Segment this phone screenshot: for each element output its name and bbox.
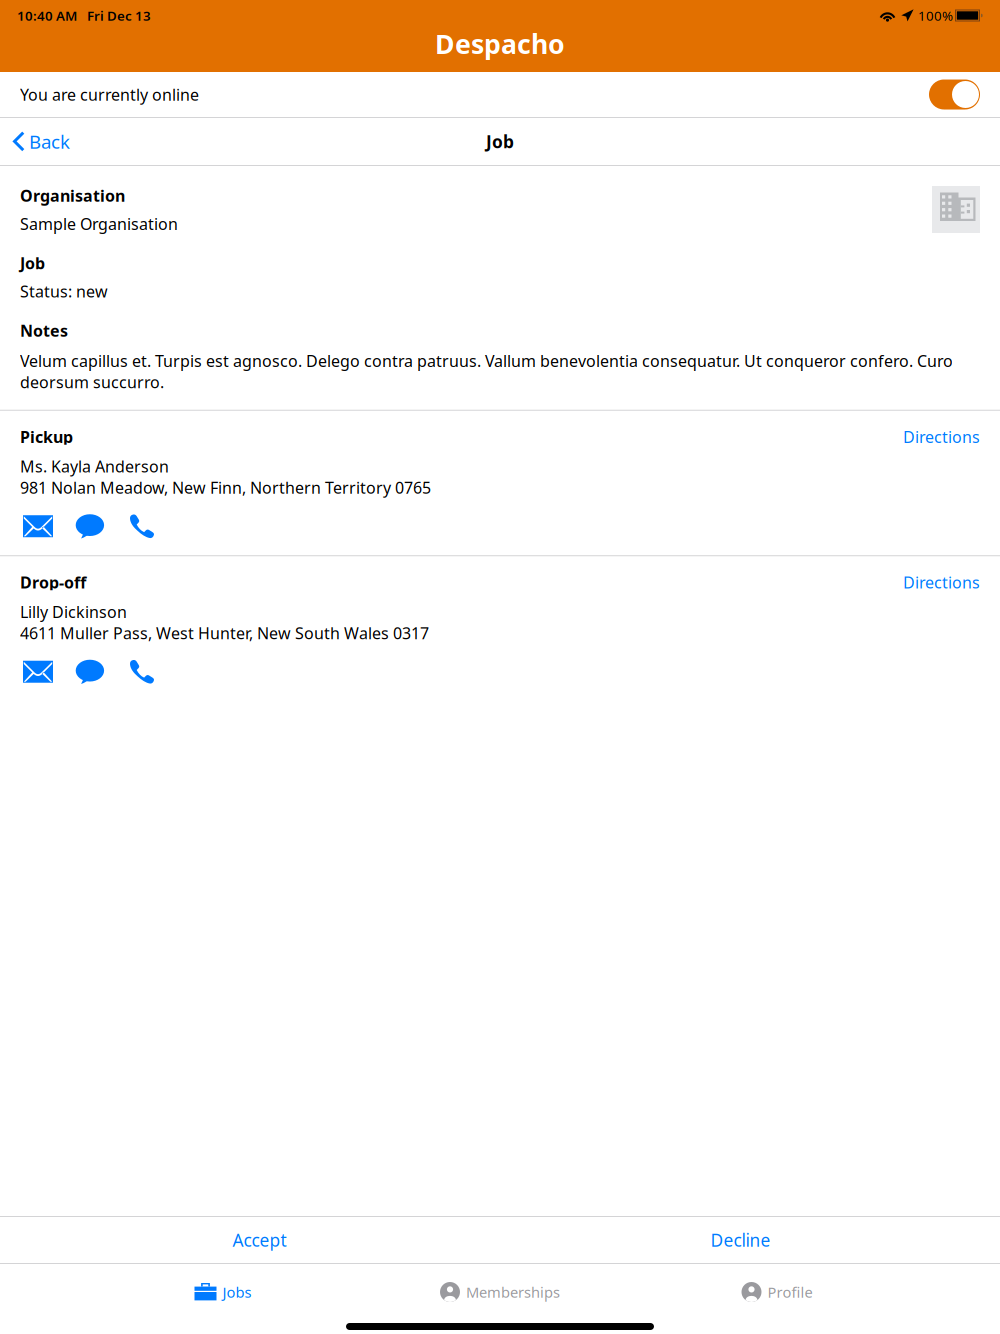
staticText: Velum capillus et. Turpis est agnosco. D…: [20, 350, 953, 393]
staticText: 4611 Muller Pass, West Hunter, New South…: [20, 622, 429, 644]
button[interactable]: Jobs: [84, 1267, 361, 1317]
button[interactable]: Directions: [903, 426, 980, 447]
staticText: Memberships: [466, 1282, 560, 1302]
staticText: Job: [486, 130, 514, 153]
button[interactable]: Call: [116, 513, 168, 539]
staticText: Notes: [20, 320, 68, 341]
staticText: Job: [20, 252, 45, 274]
button[interactable]: Call: [116, 659, 168, 685]
staticText: Fri Dec 13: [87, 7, 151, 24]
staticText: Status: new: [20, 281, 108, 302]
staticText: Profile: [767, 1282, 812, 1302]
button[interactable]: Accept: [19, 1217, 500, 1263]
staticText: Directions: [903, 572, 980, 593]
staticText: Decline: [710, 1228, 770, 1251]
button[interactable]: Message: [64, 659, 116, 685]
button[interactable]: Email: [12, 513, 64, 539]
staticText: You are currently online: [20, 84, 199, 105]
staticText: Despacho: [435, 26, 565, 61]
button[interactable]: Profile: [638, 1267, 915, 1317]
staticText: Sample Organisation: [20, 213, 178, 234]
button[interactable]: Online toggle: [929, 79, 980, 109]
button[interactable]: Memberships: [361, 1267, 638, 1317]
staticText: Lilly Dickinson: [20, 601, 127, 622]
staticText: 10:40 AM: [17, 7, 77, 24]
staticText: Drop-off: [20, 572, 86, 593]
button[interactable]: Directions: [903, 572, 980, 593]
staticText: Organisation: [20, 185, 125, 206]
button[interactable]: Decline: [500, 1217, 981, 1263]
button[interactable]: Email: [12, 659, 64, 685]
staticText: 100%: [918, 7, 953, 24]
staticText: Ms. Kayla Anderson: [20, 456, 169, 477]
button[interactable]: Back: [0, 118, 80, 165]
staticText: Accept: [232, 1228, 286, 1251]
staticText: 981 Nolan Meadow, New Finn, Northern Ter…: [20, 477, 431, 498]
staticText: Jobs: [222, 1282, 251, 1302]
staticText: Back: [29, 129, 70, 154]
staticText: Pickup: [20, 426, 73, 447]
button[interactable]: Message: [64, 513, 116, 539]
staticText: Directions: [903, 426, 980, 447]
